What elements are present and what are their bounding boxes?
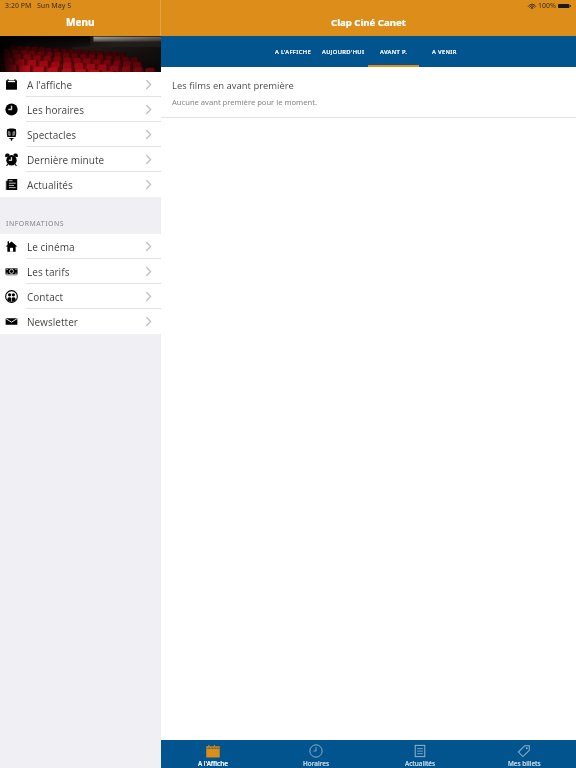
staticText: Dernière minute	[27, 153, 105, 167]
staticText: AUJOURD'HUI	[322, 48, 365, 56]
button[interactable]: Les tarifs	[0, 259, 161, 284]
button[interactable]: Contact	[0, 284, 161, 309]
staticText: Aucune avant première pour le moment.	[172, 97, 317, 107]
staticText: Newsletter	[27, 315, 78, 329]
staticText: Mes billets	[508, 759, 541, 768]
staticText: Horaires	[303, 759, 329, 768]
staticText: 100%	[538, 1, 556, 11]
staticText: Menu	[66, 15, 95, 29]
button[interactable]: Actualités	[0, 172, 161, 197]
staticText: 3:20 PM Sun May 5	[5, 1, 72, 11]
button[interactable]: A L'AFFICHE	[268, 36, 318, 67]
button[interactable]: Le cinéma	[0, 234, 161, 259]
button[interactable]: Mes billets	[472, 740, 576, 768]
staticText: A L'AFFICHE	[275, 48, 311, 56]
staticText: Actualités	[405, 759, 436, 768]
button[interactable]: AUJOURD'HUI	[318, 36, 368, 67]
button[interactable]: Dernière minute	[0, 147, 161, 172]
button[interactable]: A l'affiche	[0, 72, 161, 97]
staticText: Clap Ciné Canet	[331, 16, 406, 29]
other: Battery	[558, 3, 571, 9]
staticText: Le cinéma	[27, 240, 75, 254]
staticText: Les tarifs	[27, 265, 70, 279]
button[interactable]: AVANT P.	[368, 36, 419, 67]
staticText: Contact	[27, 290, 64, 304]
other: Wi-Fi	[528, 3, 536, 9]
staticText: A l'Affiche	[198, 759, 228, 768]
staticText: Les horaires	[27, 103, 84, 117]
button[interactable]: Newsletter	[0, 309, 161, 334]
button[interactable]: Spectacles	[0, 122, 161, 147]
button[interactable]: Horaires	[264, 740, 368, 768]
staticText: A l'affiche	[27, 78, 73, 92]
staticText: A VENIR	[432, 48, 457, 56]
staticText: Spectacles	[27, 128, 77, 142]
button[interactable]: A VENIR	[419, 36, 470, 67]
staticText: Les films en avant première	[172, 79, 294, 92]
button[interactable]: Les horaires	[0, 97, 161, 122]
staticText: INFORMATIONS	[6, 219, 65, 228]
staticText: AVANT P.	[380, 48, 408, 56]
button[interactable]: Actualités	[368, 740, 472, 768]
staticText: Actualités	[27, 178, 73, 192]
button[interactable]: A l'Affiche	[161, 740, 264, 768]
